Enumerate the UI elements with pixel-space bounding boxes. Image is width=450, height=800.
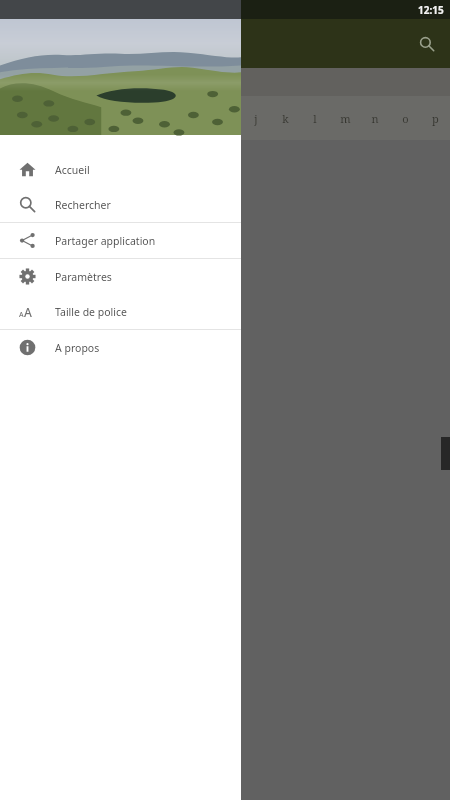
staticText: A propos	[55, 341, 100, 355]
button[interactable]: Paramètres	[0, 259, 241, 294]
button[interactable]: p	[420, 96, 450, 140]
button[interactable]: m	[330, 96, 360, 140]
staticText: Partager application	[55, 234, 156, 248]
staticText: p	[432, 111, 439, 126]
staticText: n	[371, 111, 379, 126]
button[interactable]: Rechercher	[0, 187, 241, 222]
staticText: Paramètres	[55, 270, 112, 284]
button[interactable]: n	[360, 96, 390, 140]
button[interactable]: Accueil	[0, 152, 241, 187]
staticText: A	[19, 310, 24, 320]
button[interactable]: j	[241, 96, 270, 140]
staticText: l	[313, 111, 317, 126]
staticText: Rechercher	[55, 198, 111, 212]
button[interactable]: Rechercher	[411, 28, 443, 60]
button[interactable]: o	[390, 96, 420, 140]
staticText: m	[340, 111, 351, 126]
staticText: k	[282, 111, 289, 126]
staticText: o	[402, 111, 409, 126]
staticText: Taille de police	[55, 305, 127, 319]
staticText: 12:15	[418, 3, 444, 17]
staticText: j	[254, 111, 258, 126]
button[interactable]: A propos	[0, 330, 241, 365]
staticText: Accueil	[55, 163, 90, 177]
button[interactable]: Partager application	[0, 223, 241, 258]
button[interactable]: k	[270, 96, 300, 140]
button[interactable]: l	[300, 96, 330, 140]
staticText: A	[24, 304, 32, 320]
button[interactable]: A	[0, 294, 241, 329]
